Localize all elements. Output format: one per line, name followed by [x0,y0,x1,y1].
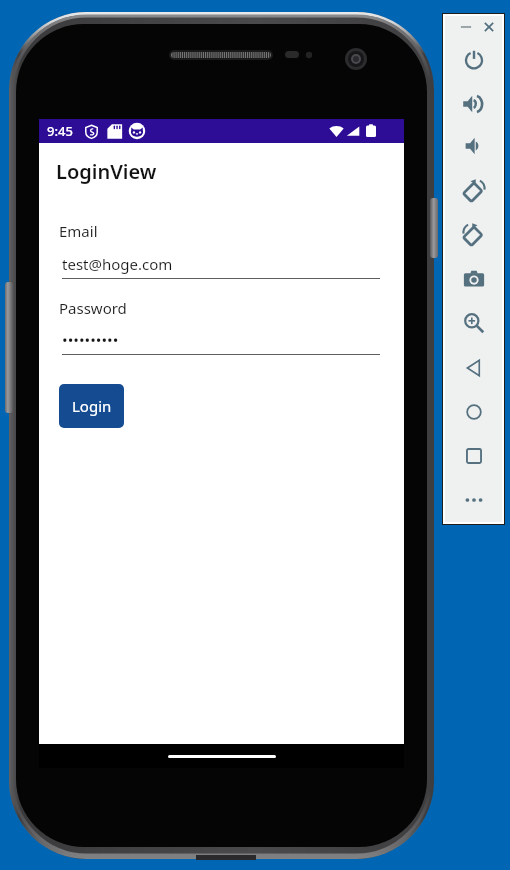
button[interactable]: Minimize [458,18,474,34]
button[interactable]: Volume up [452,88,496,120]
button[interactable]: More [452,484,496,516]
button[interactable]: Volume down [452,130,496,162]
button[interactable]: Zoom [452,307,496,339]
staticText: •••••••••• [62,330,119,350]
staticText: Email [59,221,98,241]
staticText: LoginView [56,158,157,185]
button[interactable]: Power [452,44,496,76]
staticText: Login [72,396,112,416]
button[interactable]: Home [452,396,496,428]
button[interactable]: Close [481,18,497,34]
button[interactable]: Rotate left [452,174,496,206]
button[interactable]: Rotate right [452,218,496,250]
button[interactable]: Back [452,352,496,384]
staticText: 9:45 [47,122,73,140]
staticText: test@hoge.com [62,254,173,274]
button[interactable]: Overview [452,440,496,472]
staticText: Password [59,298,127,318]
button[interactable]: Take screenshot [452,263,496,295]
button[interactable]: Login [59,384,124,428]
